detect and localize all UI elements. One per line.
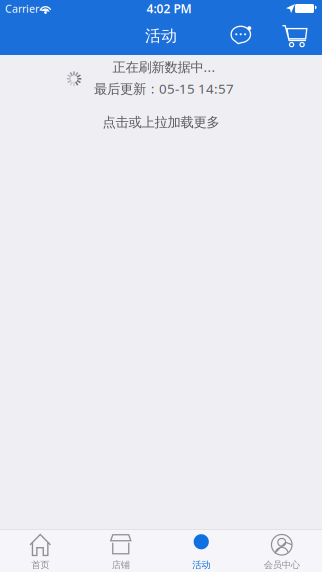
button[interactable]: Shopping cart: [274, 17, 316, 55]
staticText: 活动: [145, 26, 177, 46]
staticText: 店铺: [112, 559, 130, 571]
button[interactable]: 会员中心: [241, 529, 322, 572]
button[interactable]: 店铺: [80, 529, 161, 572]
staticText: 点击或上拉加载更多: [102, 114, 219, 130]
staticText: 正在刷新数据中...: [112, 58, 215, 76]
staticText: 4:02 PM: [146, 0, 191, 16]
button[interactable]: 活动: [161, 529, 241, 572]
staticText: 最后更新：05-15 14:57: [94, 80, 234, 97]
button[interactable]: Messages: [206, 17, 274, 55]
button[interactable]: 首页: [0, 529, 80, 572]
staticText: Carrier: [5, 1, 39, 16]
staticText: 首页: [31, 559, 49, 571]
staticText: 会员中心: [264, 559, 300, 571]
staticText: 活动: [192, 559, 210, 571]
